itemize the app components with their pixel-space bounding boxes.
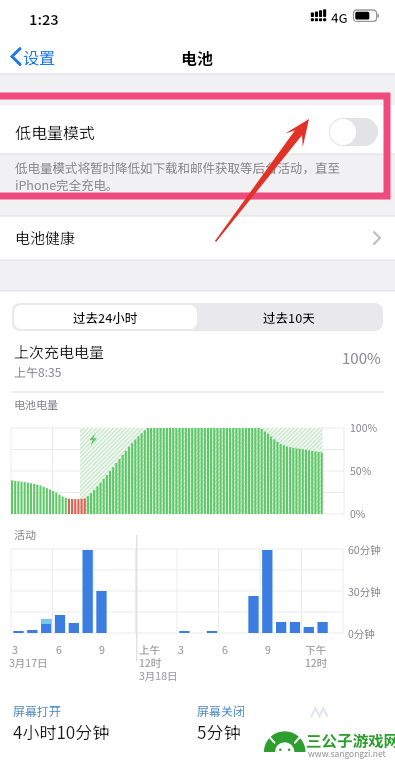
staticText: 100% xyxy=(350,420,378,435)
button[interactable]: 低电量模式 xyxy=(0,107,395,156)
staticText: 过去10天 xyxy=(263,308,315,326)
staticText: 1:23 xyxy=(29,8,59,29)
button[interactable]: 设置 xyxy=(5,42,66,71)
button[interactable]: 过去24小时 xyxy=(14,305,197,329)
staticText: 上午 12时 xyxy=(139,642,162,670)
staticText: 屏幕打开 xyxy=(13,702,62,719)
staticText: 6 xyxy=(56,642,62,657)
staticText: 9 xyxy=(265,642,271,657)
staticText: 5分钟 xyxy=(197,719,241,744)
staticText: 下午 12时 xyxy=(305,642,328,670)
staticText: 三公子游戏网 xyxy=(306,729,395,751)
staticText: 30分钟 xyxy=(348,584,381,599)
staticText: 3月17日 xyxy=(9,655,48,670)
staticText: 设置 xyxy=(23,45,56,68)
staticText: 过去24小时 xyxy=(73,308,138,326)
staticText: 3 xyxy=(12,642,18,657)
button[interactable]: 过去10天 xyxy=(197,305,381,329)
staticText: 6 xyxy=(222,642,228,657)
staticText: 活动 xyxy=(14,526,36,542)
staticText: 上次充电电量 xyxy=(14,341,105,363)
staticText: 4小时10分钟 xyxy=(13,719,110,744)
staticText: 低电量模式将暂时降低如下载和邮件获取等后台活动，直至 iPhone完全充电。 xyxy=(15,158,341,194)
staticText: 屏幕关闭 xyxy=(197,702,246,719)
button[interactable]: Toggle low power mode xyxy=(329,118,378,146)
staticText: 0% xyxy=(350,506,366,521)
staticText: 上午8:35 xyxy=(14,363,62,380)
staticText: 3 xyxy=(178,642,184,657)
staticText: 100% xyxy=(342,347,381,369)
staticText: 50% xyxy=(350,463,372,478)
button[interactable]: 电池健康 xyxy=(0,216,395,260)
staticText: 低电量模式 xyxy=(15,120,96,143)
staticText: 电池 xyxy=(181,46,214,69)
staticText: 4G xyxy=(331,8,348,27)
staticText: 0分钟 xyxy=(348,626,375,641)
staticText: www.sangongzi.net xyxy=(308,747,386,759)
staticText: 3月18日 xyxy=(139,668,178,683)
staticText: 9 xyxy=(99,642,105,657)
staticText: 60分钟 xyxy=(348,542,381,557)
staticText: 电池健康 xyxy=(15,227,76,249)
staticText: 电池电量 xyxy=(14,396,58,412)
